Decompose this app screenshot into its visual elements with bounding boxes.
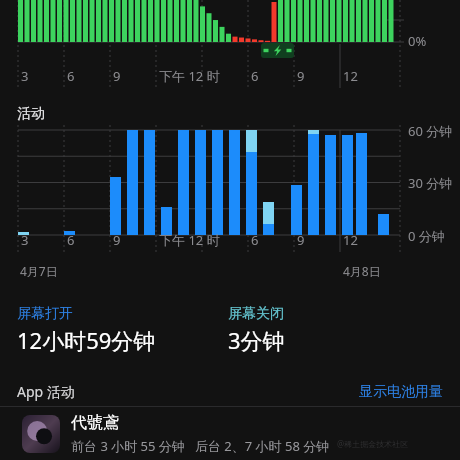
staticText: 3	[21, 231, 29, 249]
staticText: 9	[297, 231, 305, 249]
staticText: 代號鳶	[71, 413, 119, 433]
staticText: 活动	[17, 105, 45, 123]
staticText: App 活动	[17, 382, 75, 401]
staticText: 6	[67, 67, 75, 85]
staticText: 0%	[408, 32, 427, 50]
staticText: 9	[113, 67, 121, 85]
button[interactable]: 显示电池用量	[359, 383, 443, 401]
staticText: 9	[113, 231, 121, 249]
staticText: 4月8日	[343, 263, 381, 279]
staticText: 6	[67, 231, 75, 249]
staticText: 12	[343, 67, 358, 85]
staticText: 60 分钟	[408, 122, 453, 140]
staticText: 9	[297, 67, 305, 85]
button[interactable]: 代號鳶	[0, 407, 460, 460]
staticText: 12	[343, 231, 358, 249]
staticText: 30 分钟	[408, 174, 453, 192]
staticText: 12小时59分钟	[17, 325, 156, 355]
staticText: 下午 12 时	[159, 67, 220, 85]
staticText: 4月7日	[20, 263, 58, 279]
staticText: 屏幕打开	[17, 305, 73, 323]
staticText: 前台 3 小时 55 分钟 后台 2、7 小时 58 分钟	[71, 437, 330, 455]
staticText: 屏幕关闭	[228, 305, 284, 323]
staticText: 6	[251, 67, 259, 85]
staticText: 显示电池用量	[359, 383, 443, 401]
staticText: 3	[21, 67, 29, 85]
staticText: 下午 12 时	[159, 231, 220, 249]
staticText: 0 分钟	[408, 227, 445, 245]
staticText: @稀土掘金技术社区	[337, 438, 409, 449]
other: Charging	[261, 43, 294, 58]
staticText: 6	[251, 231, 259, 249]
staticText: 3分钟	[228, 325, 285, 355]
